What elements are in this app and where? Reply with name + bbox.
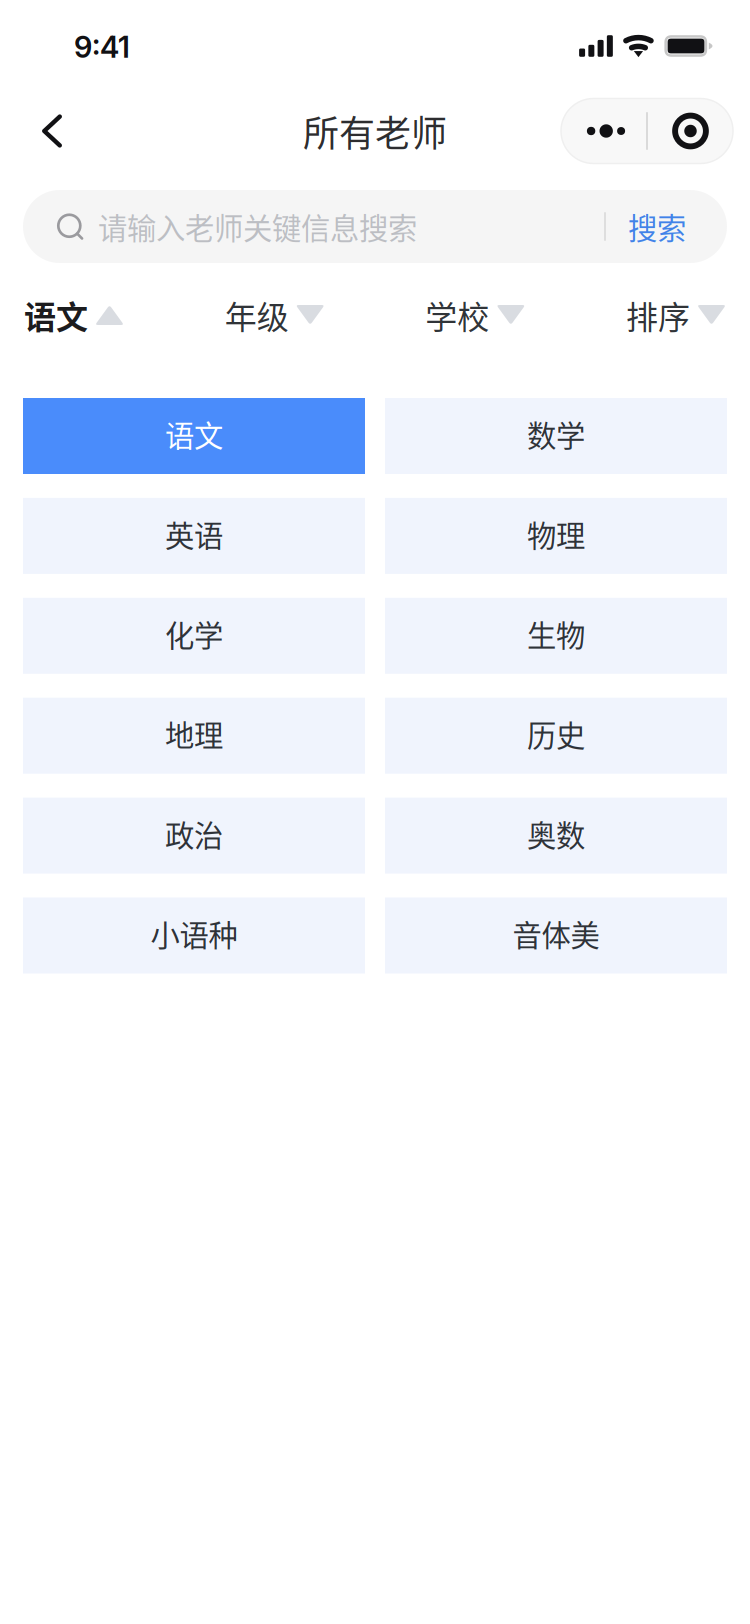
button[interactable]: 化学 [23,598,365,674]
button[interactable]: 年级 [225,287,325,343]
staticText: 学校 [425,292,489,338]
staticText: 所有老师 [303,105,447,157]
button[interactable]: 历史 [385,698,727,774]
staticText: 英语 [165,513,223,555]
staticText: 搜索 [628,205,686,248]
button[interactable]: 排序 [626,287,726,343]
staticText: 9:41 [74,29,130,65]
button[interactable]: 音体美 [385,897,727,973]
staticText: 语文 [165,413,223,455]
button[interactable]: 学校 [425,287,525,343]
staticText: 历史 [527,712,585,755]
button[interactable]: 语文 [24,287,124,343]
button[interactable]: 数学 [385,398,727,474]
staticText: 化学 [165,613,223,655]
staticText: 地理 [165,712,223,755]
staticText: 语文 [24,292,88,338]
button[interactable]: 英语 [23,498,365,574]
button[interactable]: 物理 [385,498,727,574]
button[interactable]: 奥数 [385,798,727,874]
staticText: 音体美 [512,912,599,955]
button[interactable]: 政治 [23,798,365,874]
button[interactable]: 语文 [23,398,365,474]
staticText: 政治 [165,812,223,855]
staticText: 数学 [527,413,585,455]
button[interactable]: 请输入老师关键信息搜索 [23,190,727,263]
staticText: 年级 [225,292,289,338]
button[interactable]: More options [561,98,733,163]
button[interactable]: 地理 [23,698,365,774]
button[interactable]: Back [0,90,104,172]
staticText: 小语种 [150,912,237,955]
staticText: 生物 [527,613,585,655]
button[interactable]: 小语种 [23,897,365,973]
staticText: 奥数 [527,812,585,855]
staticText: 物理 [527,513,585,555]
staticText: 请输入老师关键信息搜索 [98,205,417,248]
staticText: 排序 [626,292,690,338]
button[interactable]: 生物 [385,598,727,674]
